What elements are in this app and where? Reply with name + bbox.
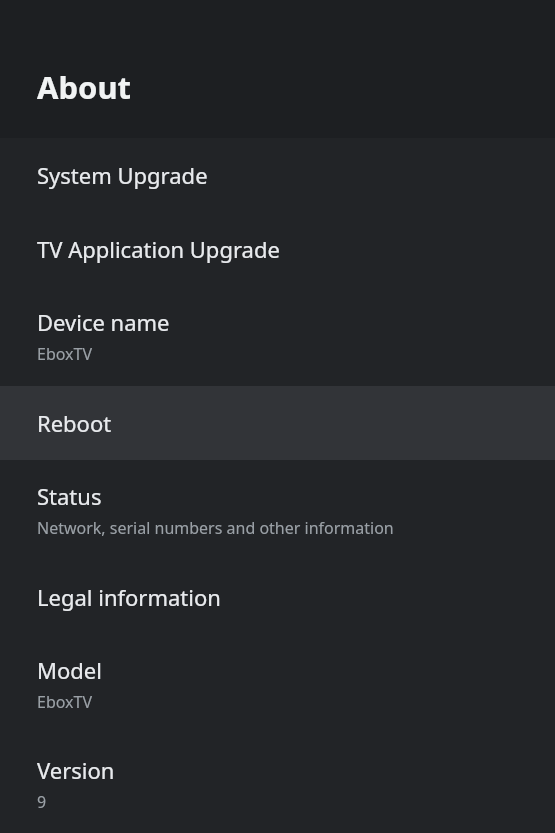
staticText: Legal information <box>37 582 221 612</box>
staticText: About <box>37 66 132 108</box>
button[interactable]: Device name <box>0 286 555 386</box>
staticText: Reboot <box>37 408 112 438</box>
button[interactable]: TV Application Upgrade <box>0 212 555 286</box>
staticText: EboxTV <box>37 691 93 713</box>
button[interactable]: Version <box>0 734 555 833</box>
staticText: Status <box>37 481 102 511</box>
staticText: Model <box>37 655 102 685</box>
button[interactable]: System Upgrade <box>0 138 555 212</box>
button[interactable]: Status <box>0 460 555 560</box>
button[interactable]: Reboot <box>0 386 555 460</box>
button[interactable]: Model <box>0 634 555 734</box>
staticText: EboxTV <box>37 343 93 365</box>
button[interactable]: Legal information <box>0 560 555 634</box>
staticText: TV Application Upgrade <box>37 234 280 264</box>
staticText: System Upgrade <box>37 160 208 190</box>
staticText: Version <box>37 755 115 785</box>
staticText: Network, serial numbers and other inform… <box>37 517 394 539</box>
staticText: 9 <box>37 791 47 813</box>
staticText: Device name <box>37 307 170 337</box>
